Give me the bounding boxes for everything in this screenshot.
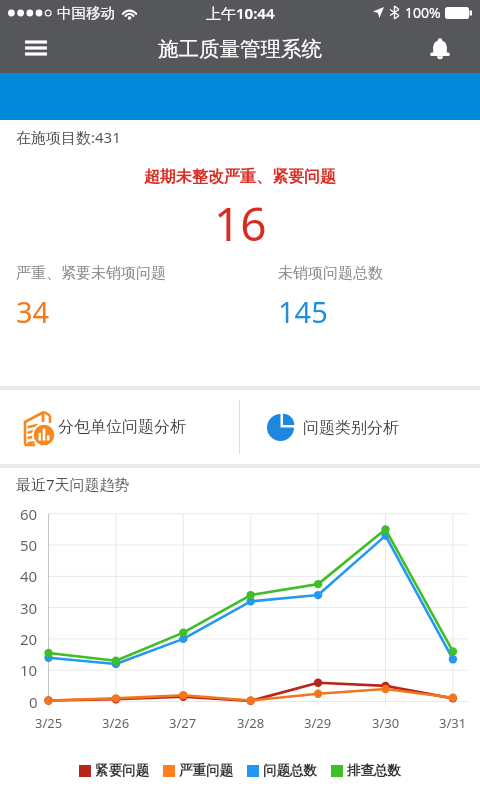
button[interactable]: 严重问题 — [163, 762, 233, 779]
staticText: 未销项问题总数 — [278, 264, 383, 283]
staticText: 16 — [214, 192, 267, 244]
button[interactable]: 排查总数 — [331, 762, 401, 779]
staticText: 中国移动 — [57, 4, 115, 22]
staticText: 在施项目数:431 — [16, 127, 121, 147]
staticText: 34 — [16, 292, 50, 331]
staticText: 超期未整改严重、紧要问题 — [144, 167, 336, 187]
staticText: 60 — [20, 504, 38, 524]
staticText: 10 — [20, 660, 38, 680]
staticText: 紧要问题 — [95, 762, 149, 779]
staticText: 排查总数 — [347, 762, 401, 779]
button[interactable]: 分包单位问题分析 — [0, 390, 239, 464]
button[interactable] — [422, 31, 458, 67]
staticText: 分包单位问题分析 — [58, 417, 186, 437]
button[interactable]: 紧要问题 — [79, 762, 149, 779]
staticText: 30 — [20, 598, 38, 618]
staticText: 3/27 — [169, 714, 197, 732]
staticText: 上午10:44 — [206, 3, 275, 23]
staticText: 3/29 — [304, 714, 332, 732]
button[interactable] — [16, 29, 56, 69]
staticText: 严重问题 — [179, 762, 233, 779]
staticText: 3/31 — [439, 714, 467, 732]
staticText: 问题总数 — [263, 762, 317, 779]
staticText: 145 — [278, 292, 328, 331]
button[interactable]: 问题类别分析 — [240, 390, 480, 464]
staticText: 施工质量管理系统 — [158, 36, 322, 62]
staticText: 严重、紧要未销项问题 — [16, 264, 166, 283]
button[interactable]: 问题总数 — [247, 762, 317, 779]
staticText: 3/30 — [372, 714, 400, 732]
staticText: 20 — [20, 629, 38, 649]
staticText: 100% — [405, 3, 441, 22]
staticText: 50 — [20, 535, 38, 555]
staticText: 最近7天问题趋势 — [16, 474, 130, 494]
staticText: 40 — [20, 566, 38, 586]
staticText: 问题类别分析 — [303, 418, 399, 438]
staticText: 3/26 — [102, 714, 130, 732]
staticText: 3/28 — [237, 714, 265, 732]
staticText: 0 — [29, 692, 38, 712]
staticText: 3/25 — [35, 714, 63, 732]
